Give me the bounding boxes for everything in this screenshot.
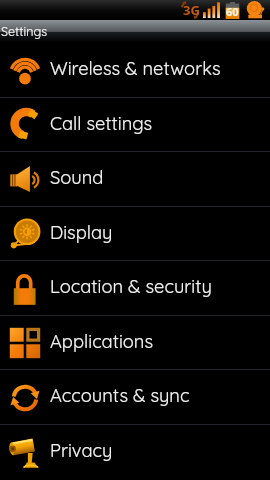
button[interactable]: Sound <box>0 152 270 207</box>
staticText: 60 <box>226 4 239 19</box>
button[interactable]: Call settings <box>0 98 270 152</box>
staticText: Accounts & sync <box>50 384 190 407</box>
staticText: Settings <box>1 23 48 39</box>
staticText: 3G <box>183 1 200 19</box>
button[interactable]: Applications <box>0 316 270 370</box>
button[interactable]: Location & security <box>0 261 270 316</box>
staticText: Applications <box>50 330 154 353</box>
staticText: Display <box>50 221 113 244</box>
staticText: Privacy <box>50 439 113 462</box>
button[interactable]: Display <box>0 207 270 261</box>
staticText: Call settings <box>50 112 153 135</box>
button[interactable]: Privacy <box>0 425 270 480</box>
staticText: Sound <box>50 166 104 189</box>
staticText: Location & security <box>50 275 212 298</box>
button[interactable]: Accounts & sync <box>0 370 270 425</box>
staticText: Wireless & networks <box>50 57 221 80</box>
button[interactable]: Wireless & networks <box>0 42 270 98</box>
